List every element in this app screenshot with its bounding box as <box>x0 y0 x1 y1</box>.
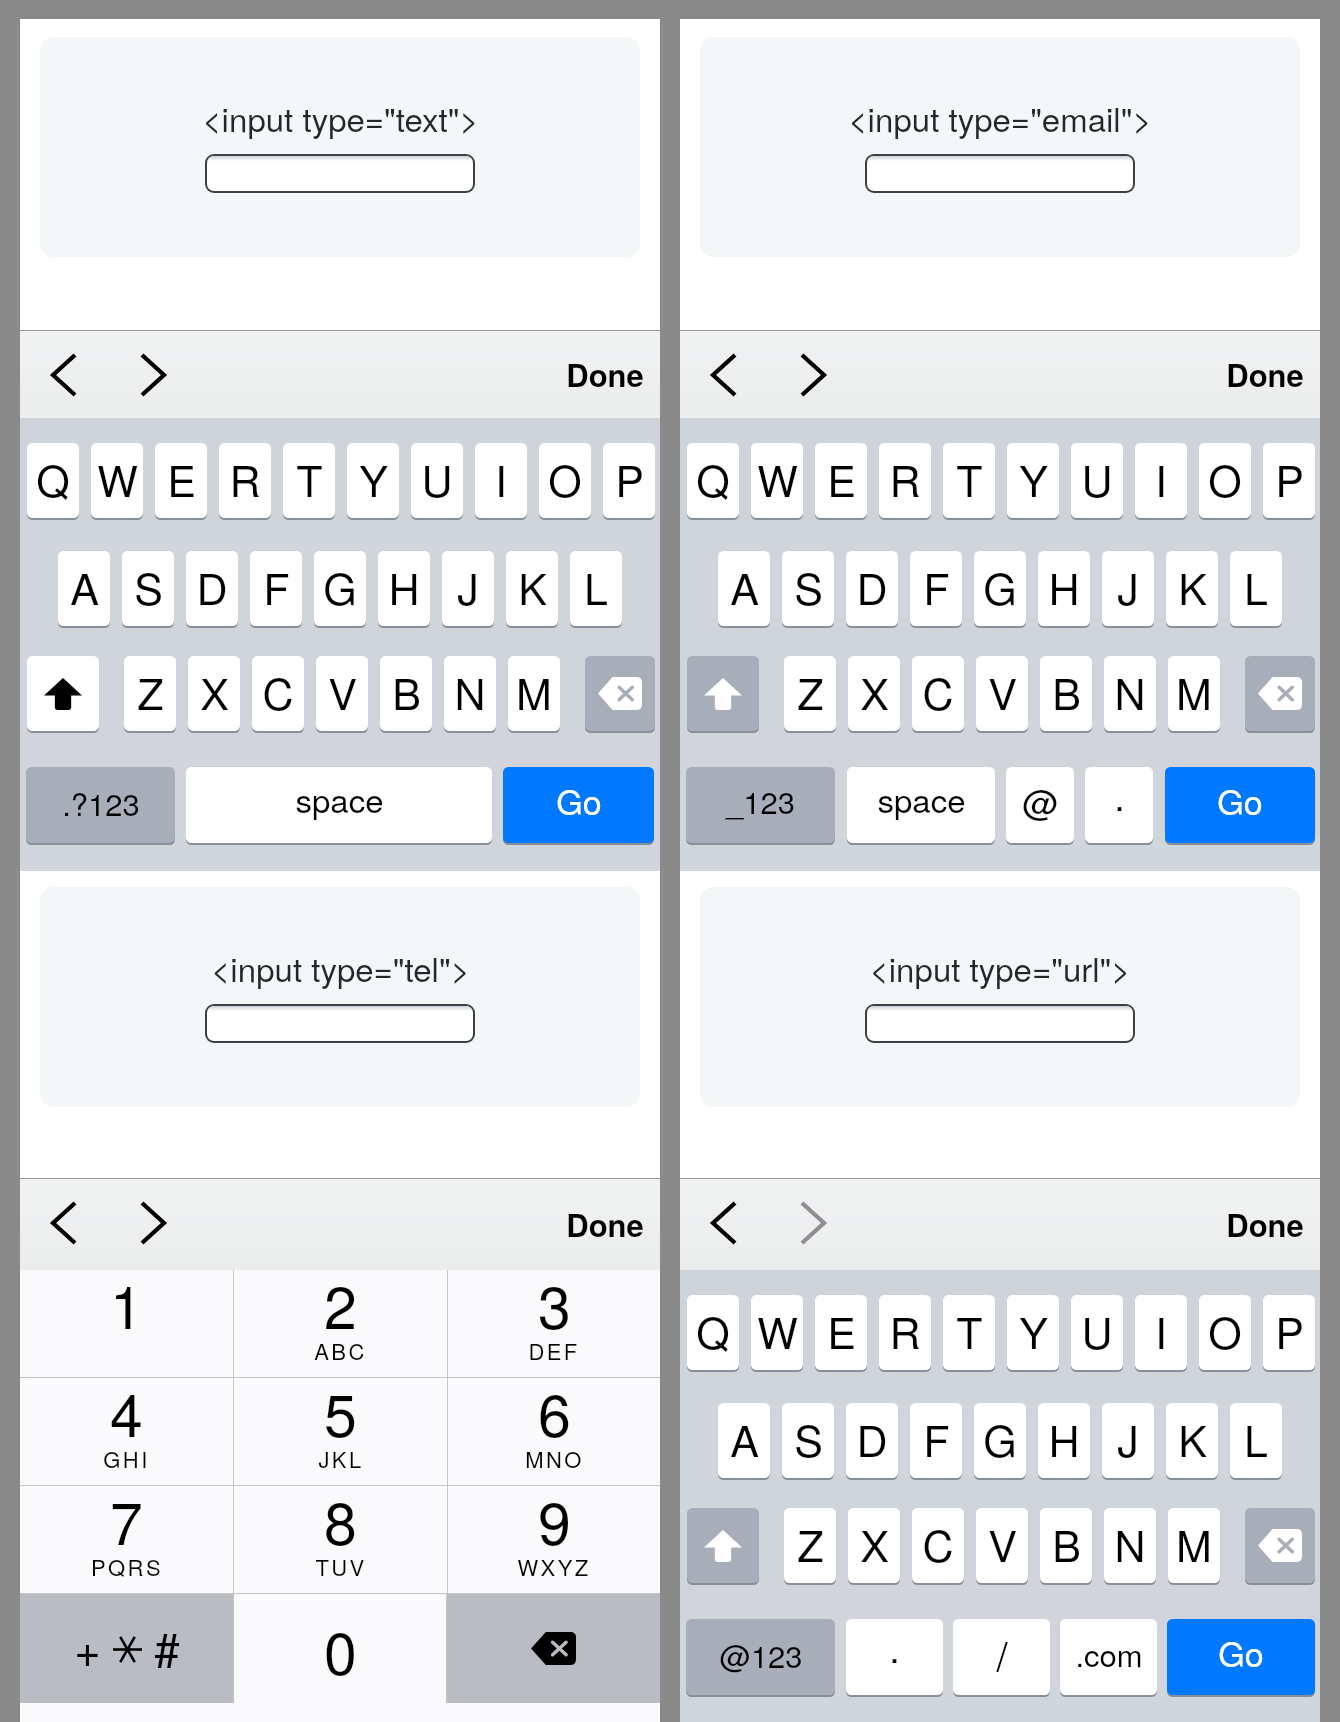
button[interactable]: V <box>316 656 368 733</box>
button[interactable]: A <box>718 551 770 628</box>
button[interactable]: 1 <box>20 1270 233 1377</box>
button[interactable]: Previous field <box>713 355 735 395</box>
button[interactable]: G <box>974 551 1026 628</box>
button[interactable]: E <box>815 443 867 520</box>
button[interactable]: T <box>283 443 335 520</box>
button[interactable]: B <box>1040 1508 1092 1585</box>
button[interactable]: V <box>976 656 1028 733</box>
button[interactable]: A <box>718 1403 770 1480</box>
button[interactable]: space <box>186 767 492 845</box>
button[interactable]: W <box>751 443 803 520</box>
button[interactable]: U <box>411 443 463 520</box>
button[interactable]: L <box>1230 1403 1282 1480</box>
button[interactable]: K <box>506 551 558 628</box>
button[interactable]: / <box>953 1619 1050 1697</box>
button[interactable]: Q <box>687 443 739 520</box>
button[interactable]: 4 <box>20 1378 233 1485</box>
button[interactable]: 8 <box>234 1486 447 1593</box>
button[interactable]: space <box>847 767 995 845</box>
button[interactable]: Next field <box>802 1203 824 1243</box>
button[interactable]: P <box>1263 1295 1315 1372</box>
button[interactable]: Shift <box>27 656 99 733</box>
button[interactable]: F <box>250 551 302 628</box>
button[interactable]: M <box>1168 656 1220 733</box>
button[interactable]: Done <box>566 330 644 418</box>
button[interactable]: Backspace <box>1245 1508 1315 1585</box>
button[interactable]: 5 <box>234 1378 447 1485</box>
button[interactable]: Done <box>1226 330 1304 418</box>
button[interactable]: 7 <box>20 1486 233 1593</box>
button[interactable]: C <box>252 656 304 733</box>
button[interactable]: D <box>846 551 898 628</box>
button[interactable]: E <box>155 443 207 520</box>
button[interactable]: Y <box>1007 443 1059 520</box>
button[interactable]: _123 <box>686 767 835 845</box>
button[interactable]: Shift <box>687 1508 759 1585</box>
button[interactable]: Previous field <box>53 1203 75 1243</box>
button[interactable]: X <box>188 656 240 733</box>
button[interactable]: E <box>815 1295 867 1372</box>
button[interactable]: Previous field <box>53 355 75 395</box>
button[interactable]: H <box>1038 1403 1090 1480</box>
button[interactable]: @ <box>1006 767 1074 845</box>
button[interactable]: N <box>1104 656 1156 733</box>
button[interactable]: .?123 <box>26 767 175 845</box>
button[interactable]: @123 <box>686 1619 835 1697</box>
button[interactable] <box>867 156 1133 191</box>
button[interactable]: I <box>1135 1295 1187 1372</box>
button[interactable]: O <box>1199 1295 1251 1372</box>
button[interactable]: J <box>1102 1403 1154 1480</box>
button[interactable]: C <box>912 1508 964 1585</box>
button[interactable]: W <box>91 443 143 520</box>
button[interactable]: .com <box>1060 1619 1157 1697</box>
button[interactable]: K <box>1166 1403 1218 1480</box>
button[interactable]: P <box>603 443 655 520</box>
button[interactable]: Go <box>1167 1619 1315 1697</box>
button[interactable]: I <box>475 443 527 520</box>
button[interactable]: Next field <box>142 355 164 395</box>
button[interactable]: Y <box>1007 1295 1059 1372</box>
button[interactable]: . <box>846 1619 943 1697</box>
button[interactable]: 3 <box>448 1270 660 1377</box>
button[interactable]: B <box>380 656 432 733</box>
button[interactable]: T <box>943 443 995 520</box>
button[interactable]: V <box>976 1508 1028 1585</box>
button[interactable]: Next field <box>802 355 824 395</box>
button[interactable]: F <box>910 1403 962 1480</box>
button[interactable]: 0 <box>234 1594 446 1703</box>
button[interactable]: R <box>879 443 931 520</box>
button[interactable]: Z <box>784 656 836 733</box>
button[interactable]: R <box>879 1295 931 1372</box>
button[interactable]: U <box>1071 443 1123 520</box>
button[interactable]: N <box>444 656 496 733</box>
button[interactable]: Z <box>784 1508 836 1585</box>
button[interactable]: H <box>1038 551 1090 628</box>
button[interactable]: X <box>848 1508 900 1585</box>
button[interactable]: F <box>910 551 962 628</box>
button[interactable]: Backspace <box>447 1594 660 1703</box>
button[interactable]: H <box>378 551 430 628</box>
button[interactable]: W <box>751 1295 803 1372</box>
button[interactable]: Next field <box>142 1203 164 1243</box>
button[interactable]: Backspace <box>585 656 655 733</box>
button[interactable]: P <box>1263 443 1315 520</box>
button[interactable] <box>207 156 473 191</box>
button[interactable]: O <box>539 443 591 520</box>
button[interactable]: K <box>1166 551 1218 628</box>
button[interactable]: S <box>782 551 834 628</box>
button[interactable]: Previous field <box>713 1203 735 1243</box>
button[interactable]: Done <box>566 1178 644 1270</box>
button[interactable]: A <box>58 551 110 628</box>
button[interactable]: S <box>782 1403 834 1480</box>
button[interactable]: Shift <box>687 656 759 733</box>
button[interactable] <box>867 1006 1133 1041</box>
button[interactable]: O <box>1199 443 1251 520</box>
button[interactable]: + <box>20 1594 233 1703</box>
button[interactable]: 9 <box>448 1486 660 1593</box>
button[interactable]: Q <box>687 1295 739 1372</box>
button[interactable]: D <box>186 551 238 628</box>
button[interactable]: R <box>219 443 271 520</box>
button[interactable]: L <box>1230 551 1282 628</box>
button[interactable]: J <box>442 551 494 628</box>
button[interactable]: M <box>508 656 560 733</box>
